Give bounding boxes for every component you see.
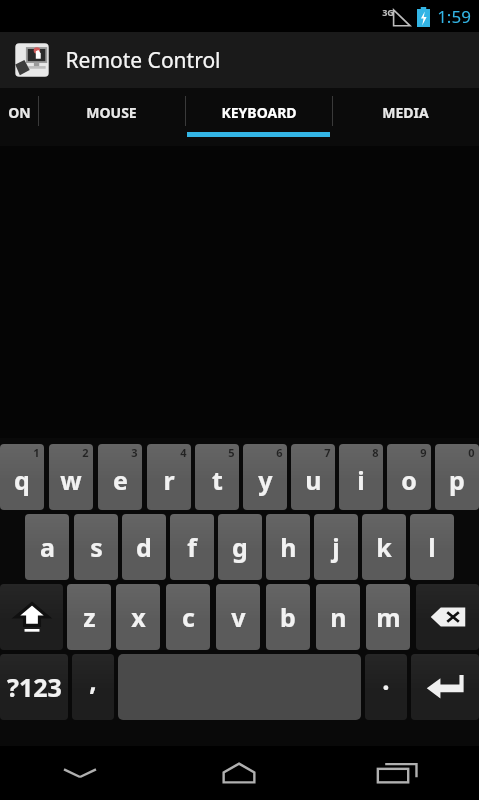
button[interactable]: 1 (0, 444, 44, 510)
button[interactable]: h (266, 514, 310, 580)
staticText: w (60, 463, 82, 497)
staticText: ON (8, 103, 31, 122)
staticText: u (305, 463, 322, 497)
button[interactable]: c (166, 584, 210, 650)
staticText: v (231, 600, 246, 634)
button[interactable]: KEYBOARD (185, 88, 332, 146)
staticText: 2 (82, 445, 89, 460)
button[interactable]: j (314, 514, 358, 580)
staticText: KEYBOARD (221, 103, 297, 122)
button[interactable]: f (170, 514, 214, 580)
staticText: b (280, 600, 296, 634)
button[interactable]: 4 (147, 444, 191, 510)
staticText: i (357, 463, 365, 497)
button[interactable]: a (25, 514, 69, 580)
button[interactable]: d (122, 514, 166, 580)
button[interactable]: 6 (243, 444, 287, 510)
staticText: n (330, 600, 347, 634)
staticText: 8 (372, 445, 379, 460)
button[interactable]: ?123 (0, 654, 68, 720)
staticText: 3 (131, 445, 138, 460)
staticText: 1 (33, 445, 40, 460)
staticText: Remote Control (65, 46, 221, 75)
button[interactable]: Shift (0, 584, 63, 650)
staticText: e (113, 463, 128, 497)
button[interactable]: Enter (411, 654, 479, 720)
staticText: x (131, 600, 146, 634)
button[interactable]: l (410, 514, 454, 580)
button[interactable]: n (316, 584, 360, 650)
button[interactable]: Hide keyboard (0, 746, 159, 800)
button[interactable]: m (366, 584, 410, 650)
staticText: s (90, 530, 103, 564)
staticText: p (449, 463, 465, 497)
staticText: 9 (420, 445, 427, 460)
staticText: MOUSE (86, 103, 137, 122)
staticText: z (83, 600, 96, 634)
staticText: MEDIA (382, 103, 429, 122)
staticText: 1:59 (437, 5, 471, 28)
button[interactable]: g (218, 514, 262, 580)
button[interactable]: 2 (49, 444, 93, 510)
button[interactable]: 5 (195, 444, 239, 510)
staticText: j (332, 530, 340, 564)
button[interactable]: MEDIA (332, 88, 479, 146)
staticText: d (136, 530, 152, 564)
staticText: y (258, 463, 273, 497)
staticText: o (401, 463, 417, 497)
staticText: h (280, 530, 297, 564)
button[interactable]: Comma (72, 654, 114, 720)
staticText: 4 (180, 445, 187, 460)
staticText: l (428, 530, 436, 564)
staticText: r (163, 463, 175, 497)
staticText: f (187, 530, 197, 564)
button[interactable]: 0 (435, 444, 479, 510)
button[interactable]: s (74, 514, 118, 580)
staticText: k (376, 530, 392, 564)
button[interactable]: Period (365, 654, 407, 720)
button[interactable]: Recent apps (319, 746, 479, 800)
button[interactable]: ON (0, 88, 38, 146)
staticText: a (40, 530, 55, 564)
button[interactable]: Backspace (416, 584, 479, 650)
button[interactable]: 7 (291, 444, 335, 510)
staticText: g (232, 530, 248, 564)
button[interactable]: 9 (387, 444, 431, 510)
button[interactable]: b (266, 584, 310, 650)
button[interactable]: 8 (339, 444, 383, 510)
staticText: m (376, 600, 401, 634)
button[interactable]: Home (159, 746, 319, 800)
staticText: t (212, 463, 223, 497)
button[interactable]: k (362, 514, 406, 580)
button[interactable]: 3 (98, 444, 142, 510)
staticText: 5 (228, 445, 235, 460)
button[interactable]: z (67, 584, 111, 650)
staticText: . (382, 662, 390, 697)
button[interactable]: MOUSE (38, 88, 185, 146)
staticText: 7 (324, 445, 331, 460)
staticText: 6 (276, 445, 283, 460)
staticText: 3G (382, 6, 394, 18)
staticText: 0 (468, 445, 475, 460)
button[interactable]: x (116, 584, 160, 650)
staticText: q (14, 463, 30, 497)
button[interactable]: v (216, 584, 260, 650)
staticText: ?123 (7, 670, 62, 704)
staticText: c (182, 600, 195, 634)
staticText: , (89, 663, 97, 698)
